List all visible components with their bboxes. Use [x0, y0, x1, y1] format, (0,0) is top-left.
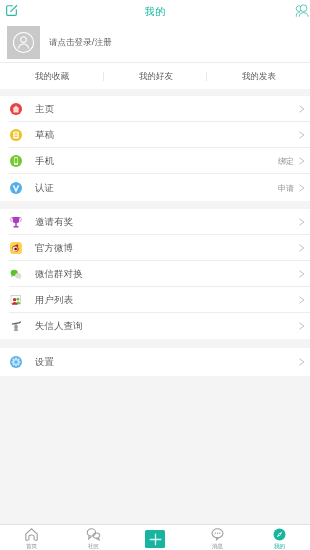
button[interactable]: 主页	[0, 96, 310, 122]
staticText: 我的	[274, 543, 285, 550]
staticText: 手机	[35, 155, 54, 167]
button[interactable]: 微信群对换	[0, 261, 310, 287]
staticText: 邀请有奖	[35, 216, 73, 228]
button[interactable]: 认证	[0, 174, 310, 201]
staticText: 申请	[278, 183, 294, 193]
staticText: 我的发表	[242, 71, 276, 82]
staticText: 官方微博	[35, 242, 73, 254]
button[interactable]: Create post	[145, 530, 165, 548]
staticText: 草稿	[35, 129, 54, 141]
button[interactable]: 用户列表	[0, 287, 310, 313]
staticText: 微信群对换	[35, 268, 83, 280]
button[interactable]: 我的收藏	[0, 63, 104, 89]
staticText: 设置	[35, 356, 54, 368]
button[interactable]: 社区	[62, 524, 124, 550]
staticText: 消息	[212, 543, 223, 550]
button[interactable]: Contacts	[293, 1, 310, 19]
staticText: 我的	[145, 5, 165, 18]
staticText: 首页	[26, 543, 37, 550]
staticText: 主页	[35, 103, 54, 115]
staticText: 认证	[35, 182, 54, 194]
staticText: 我的好友	[139, 71, 173, 82]
staticText: 我的收藏	[35, 71, 69, 82]
button[interactable]: 手机	[0, 148, 310, 174]
button[interactable]: Edit	[2, 1, 20, 19]
button[interactable]: 设置	[0, 348, 310, 376]
button[interactable]: 请点击登录/注册	[0, 22, 310, 62]
button[interactable]: 消息	[186, 524, 248, 550]
button[interactable]: 邀请有奖	[0, 209, 310, 235]
button[interactable]: 草稿	[0, 122, 310, 148]
staticText: 绑定	[278, 156, 294, 166]
staticText: 社区	[88, 543, 99, 550]
button[interactable]: 我的好友	[104, 63, 207, 89]
staticText: 请点击登录/注册	[49, 36, 112, 48]
button[interactable]: 失信人查询	[0, 313, 310, 339]
button[interactable]: 官方微博	[0, 235, 310, 261]
button[interactable]: 首页	[0, 524, 62, 550]
button[interactable]: 我的发表	[207, 63, 310, 89]
staticText: 失信人查询	[35, 320, 83, 332]
button[interactable]: 我的	[248, 524, 310, 550]
staticText: 用户列表	[35, 294, 73, 306]
